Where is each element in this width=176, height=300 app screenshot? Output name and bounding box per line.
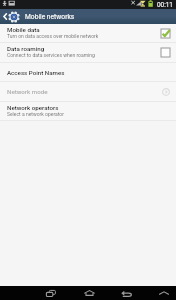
staticText: Data roaming	[7, 45, 45, 52]
button[interactable]: Access Point Names	[0, 63, 176, 81]
staticText: Network operators	[7, 104, 59, 111]
button[interactable]: Mobile data	[0, 24, 176, 42]
button[interactable]: Home	[76, 286, 102, 300]
staticText: Network mode	[7, 88, 162, 95]
staticText: Turn on data access over mobile network	[7, 33, 99, 39]
staticText: Mobile networks	[25, 13, 75, 21]
button[interactable]: Network operators	[0, 102, 176, 120]
staticText: Select a network operator	[7, 111, 64, 117]
button[interactable]: Back	[113, 286, 139, 300]
button[interactable]: Hide navigation bar	[151, 286, 176, 300]
staticText: Access Point Names	[7, 69, 65, 76]
button[interactable]: Navigate up	[0, 9, 21, 24]
button[interactable]: Network mode	[0, 82, 176, 101]
staticText: Connect to data services when roaming	[7, 52, 95, 58]
button[interactable]: Recent apps	[38, 286, 64, 300]
staticText: 00:11	[157, 1, 173, 9]
staticText: Mobile data	[7, 26, 40, 33]
button[interactable]: Data roaming	[0, 43, 176, 62]
